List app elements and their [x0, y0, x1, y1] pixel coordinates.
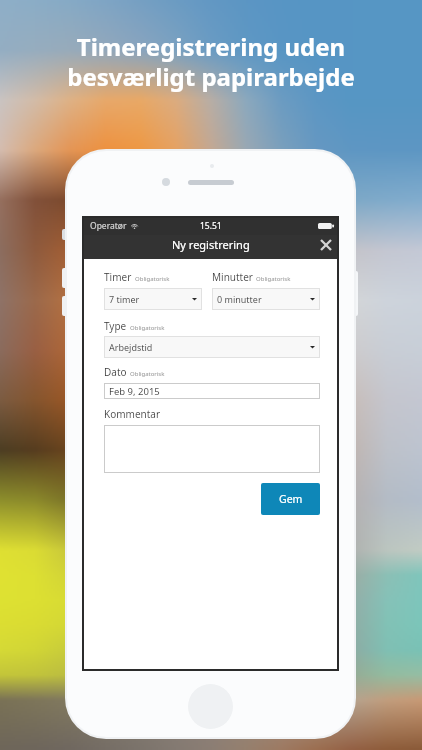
- button[interactable]: Arbejdstid: [104, 336, 320, 358]
- button[interactable]: Gem: [261, 483, 320, 515]
- staticText: Minutter: [212, 270, 253, 284]
- staticText: Timeregistrering uden besværligt papirar…: [67, 30, 355, 93]
- staticText: Obligatorisk: [130, 370, 165, 378]
- staticText: 15.51: [200, 220, 222, 232]
- staticText: Type: [104, 319, 127, 333]
- staticText: Obligatorisk: [135, 275, 170, 283]
- staticText: Feb 9, 2015: [109, 385, 160, 398]
- button[interactable]: [104, 425, 320, 473]
- button[interactable]: Feb 9, 2015: [104, 383, 320, 399]
- staticText: Kommentar: [104, 407, 161, 421]
- staticText: Operatør: [90, 220, 127, 232]
- staticText: Timer: [104, 270, 132, 284]
- staticText: 7 timer: [109, 293, 140, 305]
- staticText: Gem: [279, 492, 303, 506]
- staticText: Dato: [104, 365, 127, 379]
- button[interactable]: Close: [315, 234, 337, 256]
- button[interactable]: 7 timer: [104, 288, 202, 310]
- staticText: Obligatorisk: [130, 324, 165, 332]
- staticText: Ny registrering: [172, 237, 250, 252]
- staticText: Obligatorisk: [256, 275, 291, 283]
- staticText: Arbejdstid: [109, 341, 153, 353]
- button[interactable]: 0 minutter: [212, 288, 320, 310]
- staticText: 0 minutter: [217, 293, 262, 305]
